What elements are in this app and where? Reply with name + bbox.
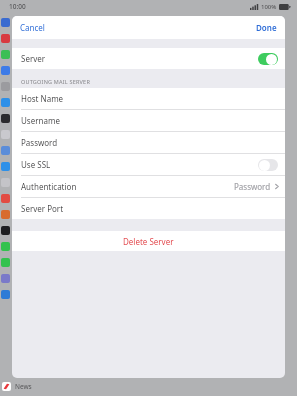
staticText: News xyxy=(15,382,32,391)
button[interactable]: App icon xyxy=(1,18,10,27)
staticText: Authentication xyxy=(21,181,77,192)
button[interactable]: App icon xyxy=(1,290,10,299)
staticText: Host Name xyxy=(21,93,64,104)
button[interactable]: Cancel xyxy=(12,18,53,37)
button[interactable]: App icon xyxy=(1,274,10,283)
button[interactable]: Username xyxy=(12,110,285,131)
button[interactable]: App icon xyxy=(1,34,10,43)
staticText: 100% xyxy=(261,3,277,11)
button[interactable]: App icon xyxy=(1,98,10,107)
staticText: Server Port xyxy=(21,203,64,214)
button[interactable]: Use SSL xyxy=(12,154,285,175)
button[interactable]: App icon xyxy=(1,114,10,123)
staticText: OUTGOING MAIL SERVER xyxy=(21,78,90,85)
button[interactable]: App icon xyxy=(1,258,10,267)
staticText: Server xyxy=(21,53,46,64)
button[interactable]: App icon xyxy=(1,242,10,251)
button[interactable]: News xyxy=(2,382,32,391)
button[interactable]: Authentication xyxy=(12,176,285,197)
button[interactable]: App icon xyxy=(1,162,10,171)
staticText: Done xyxy=(256,22,277,33)
button[interactable]: App icon xyxy=(1,210,10,219)
button[interactable]: App icon xyxy=(1,146,10,155)
button[interactable]: App icon xyxy=(1,130,10,139)
button[interactable]: App icon xyxy=(1,50,10,59)
staticText: Password xyxy=(234,181,271,192)
button[interactable]: Server xyxy=(12,48,285,69)
staticText: Username xyxy=(21,115,60,126)
button[interactable]: App icon xyxy=(1,66,10,75)
button[interactable]: Host Name xyxy=(12,88,285,109)
button[interactable]: App icon xyxy=(1,226,10,235)
staticText: Password xyxy=(21,137,58,148)
staticText: Cancel xyxy=(20,22,45,33)
button[interactable]: App icon xyxy=(1,194,10,203)
button[interactable]: Delete Server xyxy=(12,231,285,251)
staticText: Delete Server xyxy=(123,236,174,247)
staticText: 10:00 xyxy=(9,2,26,11)
button[interactable]: App icon xyxy=(1,82,10,91)
staticText: Use SSL xyxy=(21,159,51,170)
button[interactable]: Server Port xyxy=(12,198,285,219)
button[interactable]: Password xyxy=(12,132,285,153)
button[interactable]: Done xyxy=(248,18,285,37)
